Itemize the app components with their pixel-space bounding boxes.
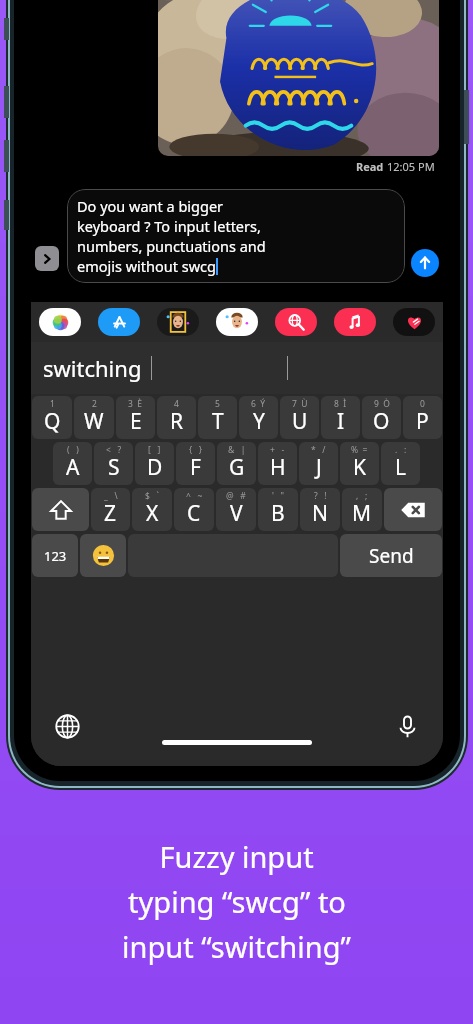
staticText: ^ ~ [186, 490, 203, 502]
staticText: E [130, 407, 142, 436]
staticText: X [146, 499, 159, 528]
staticText: S [108, 453, 120, 482]
staticText: Z [104, 499, 117, 528]
button[interactable]: Send [411, 249, 439, 277]
button[interactable]: & | [217, 442, 256, 485]
button[interactable]: < ? [94, 442, 133, 485]
staticText: $ ` [145, 490, 159, 502]
button[interactable]: _ \ [91, 488, 130, 531]
button[interactable]: Digital Touch [391, 307, 437, 337]
staticText: * / [311, 444, 326, 456]
button[interactable]: 6 Ý [239, 396, 278, 439]
button[interactable]: App Store [96, 307, 142, 337]
staticText: % = [351, 444, 368, 456]
staticText: Fuzzy input [159, 837, 314, 876]
staticText: V [230, 499, 243, 528]
staticText: [ ] [148, 444, 161, 456]
staticText: typing “swcg” to [128, 882, 346, 921]
button[interactable]: 123 [32, 534, 78, 577]
button[interactable]: 2 [74, 396, 114, 439]
button[interactable]: @ # [216, 488, 256, 531]
staticText: , ; [356, 490, 368, 502]
button[interactable]: ? ! [300, 488, 340, 531]
staticText: 8 Ì [334, 398, 347, 410]
button[interactable]: 1 [32, 396, 72, 439]
button[interactable]: 9 Ò [362, 396, 401, 439]
button[interactable]: , ; [342, 488, 382, 531]
button[interactable]: Do you want a bigger [67, 189, 405, 283]
staticText: 0 [420, 398, 425, 410]
staticText: F [190, 453, 201, 482]
button[interactable]: + - [258, 442, 297, 485]
staticText: 3 È [128, 398, 143, 410]
staticText: keyboard ? To input letters, [77, 216, 261, 236]
staticText: _ \ [104, 490, 118, 502]
button[interactable]: % = [340, 442, 379, 485]
button[interactable]: . : [381, 442, 420, 485]
button[interactable]: $ ` [132, 488, 172, 531]
button[interactable]: 7 Ù [280, 396, 319, 439]
staticText: 2 [92, 398, 97, 410]
button[interactable]: Emoji [80, 534, 126, 577]
staticText: . : [395, 444, 407, 456]
staticText: Q [44, 407, 61, 436]
button[interactable]: [ ] [135, 442, 174, 485]
button[interactable]: 8 Ì [321, 396, 360, 439]
button[interactable]: switching [41, 347, 144, 389]
button[interactable]: Music [332, 307, 378, 337]
staticText: + - [270, 444, 285, 456]
staticText: emojis without swcg [77, 256, 216, 276]
button[interactable]: Send [340, 534, 442, 577]
staticText: 9 Ò [374, 398, 390, 410]
staticText: B [271, 499, 285, 528]
staticText: J [316, 453, 322, 482]
button[interactable]: Shift [32, 488, 89, 531]
button[interactable]: Expand [35, 246, 59, 271]
button[interactable]: 3 È [116, 396, 155, 439]
button[interactable]: Memoji stickers [214, 307, 260, 337]
staticText: C [187, 499, 201, 528]
staticText: K [353, 453, 366, 482]
button[interactable]: 0 [403, 396, 442, 439]
staticText: O [373, 407, 390, 436]
staticText: T [212, 407, 224, 436]
button[interactable]: 4 [157, 396, 196, 439]
button[interactable]: { } [176, 442, 215, 485]
staticText: < ? [106, 444, 122, 456]
staticText: P [416, 407, 429, 436]
staticText: I [337, 407, 345, 436]
button[interactable]: Images [273, 307, 319, 337]
staticText: 6 Ý [251, 398, 266, 410]
staticText: Send [369, 543, 414, 569]
button[interactable]: * / [299, 442, 338, 485]
button[interactable]: ^ ~ [174, 488, 214, 531]
button[interactable]: ' " [258, 488, 298, 531]
staticText: H [270, 453, 286, 482]
button[interactable]: Memoji [155, 307, 201, 337]
staticText: switching [43, 353, 142, 383]
button[interactable]: 5 [198, 396, 237, 439]
staticText: 4 [174, 398, 179, 410]
button[interactable]: Change keyboard [49, 708, 85, 744]
staticText: { } [189, 444, 203, 456]
button[interactable]: ( ) [53, 442, 92, 485]
button[interactable]: Photos [37, 307, 83, 337]
staticText: L [395, 453, 407, 482]
staticText: 12:05 PM [387, 159, 435, 174]
staticText: 1 [50, 398, 55, 410]
staticText: M [352, 499, 372, 528]
staticText: G [229, 453, 245, 482]
button[interactable]: Backspace [384, 488, 442, 531]
staticText: @ # [226, 490, 246, 502]
staticText: 7 Ù [292, 398, 308, 410]
staticText: 5 [215, 398, 220, 410]
staticText: W [84, 407, 104, 436]
button[interactable]: Voice input [389, 708, 425, 744]
staticText: Y [253, 407, 265, 436]
staticText: numbers, punctuations and [77, 236, 266, 256]
staticText: A [66, 453, 80, 482]
staticText: ( ) [67, 444, 79, 456]
staticText: 123 [44, 547, 67, 565]
staticText: ' " [272, 490, 285, 502]
